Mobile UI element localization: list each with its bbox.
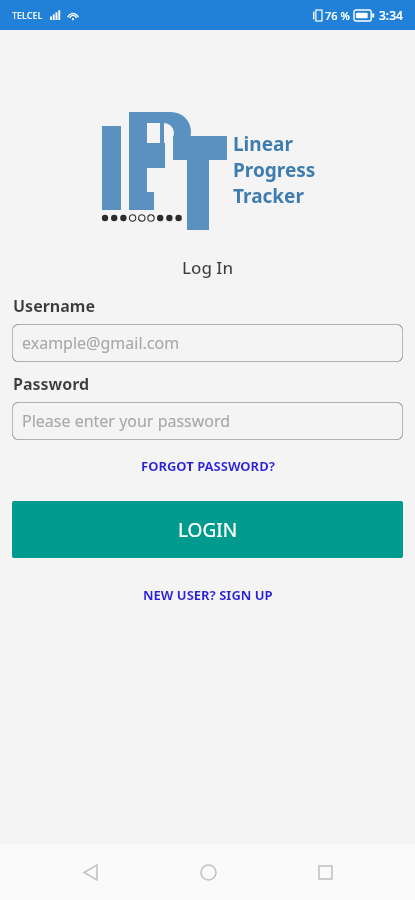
button[interactable]: LOGIN xyxy=(12,501,403,558)
staticText: NEW USER? SIGN UP xyxy=(143,586,273,604)
staticText: Username xyxy=(13,295,95,317)
staticText: FORGOT PASSWORD? xyxy=(141,457,275,475)
button[interactable]: example@gmail.com xyxy=(12,324,403,362)
button[interactable]: Back xyxy=(62,844,118,900)
staticText: Linear xyxy=(233,131,293,157)
button[interactable]: Recent apps xyxy=(297,844,353,900)
staticText: Tracker xyxy=(233,183,304,209)
button[interactable]: FORGOT PASSWORD? xyxy=(0,452,415,480)
button[interactable]: NEW USER? SIGN UP xyxy=(0,581,415,609)
staticText: Log In xyxy=(0,256,415,279)
staticText: TELCEL xyxy=(12,9,43,21)
staticText: LOGIN xyxy=(178,517,238,543)
button[interactable]: Home xyxy=(180,844,236,900)
staticText: Please enter your password xyxy=(22,410,231,432)
staticText: Password xyxy=(13,373,90,395)
staticText: example@gmail.com xyxy=(22,332,180,354)
staticText: 3:34 xyxy=(379,7,403,23)
staticText: 76 % xyxy=(325,8,350,23)
button[interactable]: Please enter your password xyxy=(12,402,403,440)
staticText: Progress xyxy=(233,157,316,183)
